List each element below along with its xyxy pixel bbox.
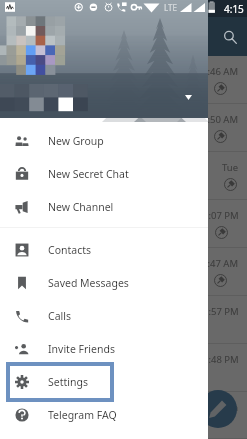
button[interactable]: 4:50 AM (0, 104, 247, 152)
staticText: Telegram FAQ (48, 408, 117, 422)
button[interactable]: New Channel (0, 190, 208, 223)
staticText: Saved Messages (48, 276, 129, 290)
staticText: Calls (48, 309, 71, 323)
staticText: Invite Friends (48, 342, 115, 356)
button[interactable]: Telegram FAQ (0, 398, 208, 431)
button[interactable]: New Group (0, 124, 208, 157)
button[interactable]: 7:07 PM (0, 200, 247, 248)
staticText: 2:57 PM (203, 305, 239, 318)
button[interactable]: 2:57 PM (0, 296, 247, 344)
button[interactable]: Search (218, 25, 242, 49)
button[interactable]: New message (199, 390, 237, 428)
staticText: Mon (218, 401, 239, 414)
button[interactable]: Settings (0, 365, 208, 398)
staticText: Settings (48, 375, 88, 389)
button[interactable]: Mon (0, 392, 247, 439)
button[interactable]: Calls (0, 299, 208, 332)
staticText: 1:48 PM (203, 353, 239, 366)
staticText: New Group (48, 134, 104, 148)
button[interactable]: 1:48 PM (0, 344, 247, 392)
staticText: 4:46 AM (202, 65, 239, 78)
button[interactable]: Invite Friends (0, 332, 208, 365)
button[interactable]: Saved Messages (0, 266, 208, 299)
button[interactable]: Contacts (0, 233, 208, 266)
staticText: 4:50 AM (202, 113, 239, 126)
staticText: 9:47 AM (202, 257, 239, 270)
button[interactable]: 9:47 AM (0, 248, 247, 296)
staticText: New Channel (48, 200, 114, 214)
button[interactable]: Tue (0, 152, 247, 200)
staticText: 7:07 PM (203, 209, 239, 222)
staticText: Tue (222, 161, 239, 174)
button[interactable]: 4:46 AM (0, 56, 247, 104)
staticText: 4:15 (224, 2, 244, 16)
staticText: New Secret Chat (48, 167, 129, 181)
staticText: LTE (164, 2, 177, 13)
button[interactable]: New Secret Chat (0, 157, 208, 190)
staticText: Contacts (48, 243, 92, 257)
